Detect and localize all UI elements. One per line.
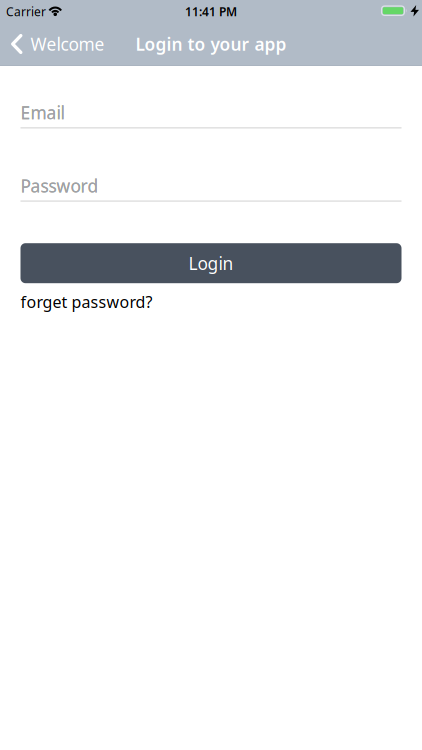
button[interactable]: forget password? — [20, 291, 152, 313]
staticText: Carrier — [6, 3, 46, 19]
staticText: 11:41 PM — [185, 3, 237, 19]
staticText: forget password? — [20, 291, 152, 312]
secureTextField[interactable]: Password — [20, 174, 401, 197]
staticText: Login to your app — [135, 32, 286, 55]
button[interactable]: Welcome — [0, 23, 104, 65]
textField[interactable]: Email — [20, 101, 401, 124]
staticText: Password — [20, 174, 98, 197]
staticText: Email — [20, 101, 64, 124]
staticText: Login — [188, 252, 233, 275]
staticText: Welcome — [30, 32, 104, 55]
staticText: Email — [20, 101, 64, 124]
button[interactable]: Login — [20, 243, 401, 283]
staticText: Password — [20, 174, 98, 197]
